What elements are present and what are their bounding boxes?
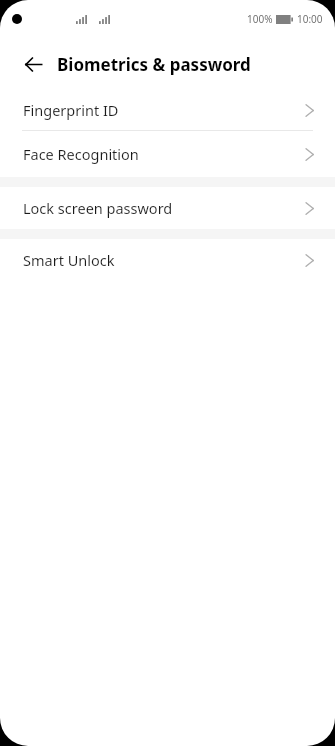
- staticText: Biometrics & password: [57, 53, 251, 76]
- button[interactable]: Lock screen password: [0, 187, 335, 229]
- button[interactable]: Back: [17, 48, 49, 80]
- button[interactable]: Face Recognition: [0, 131, 335, 177]
- staticText: Fingerprint ID: [23, 100, 305, 120]
- staticText: 100%: [247, 12, 273, 26]
- staticText: Smart Unlock: [23, 250, 305, 270]
- staticText: 10:00: [297, 12, 323, 26]
- button[interactable]: Smart Unlock: [0, 239, 335, 281]
- staticText: Lock screen password: [23, 198, 305, 218]
- button[interactable]: Fingerprint ID: [0, 90, 335, 130]
- staticText: Face Recognition: [23, 144, 305, 164]
